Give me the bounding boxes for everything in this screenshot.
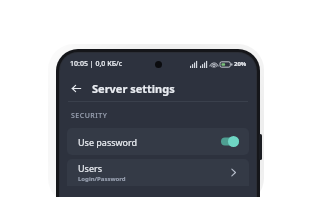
- staticText: Login/Password: [78, 175, 126, 183]
- staticText: Server settings: [92, 81, 175, 96]
- button[interactable]: Use password: [67, 128, 249, 155]
- staticText: SECURITY: [71, 111, 108, 121]
- button[interactable]: Back: [66, 78, 86, 98]
- button[interactable]: Users: [67, 159, 249, 186]
- staticText: 20%: [234, 60, 247, 68]
- button[interactable]: Use password toggle: [221, 136, 239, 147]
- staticText: Use password: [78, 136, 138, 148]
- staticText: 10:05 | 0,0 КБ/c: [70, 59, 123, 69]
- staticText: Users: [78, 162, 102, 174]
